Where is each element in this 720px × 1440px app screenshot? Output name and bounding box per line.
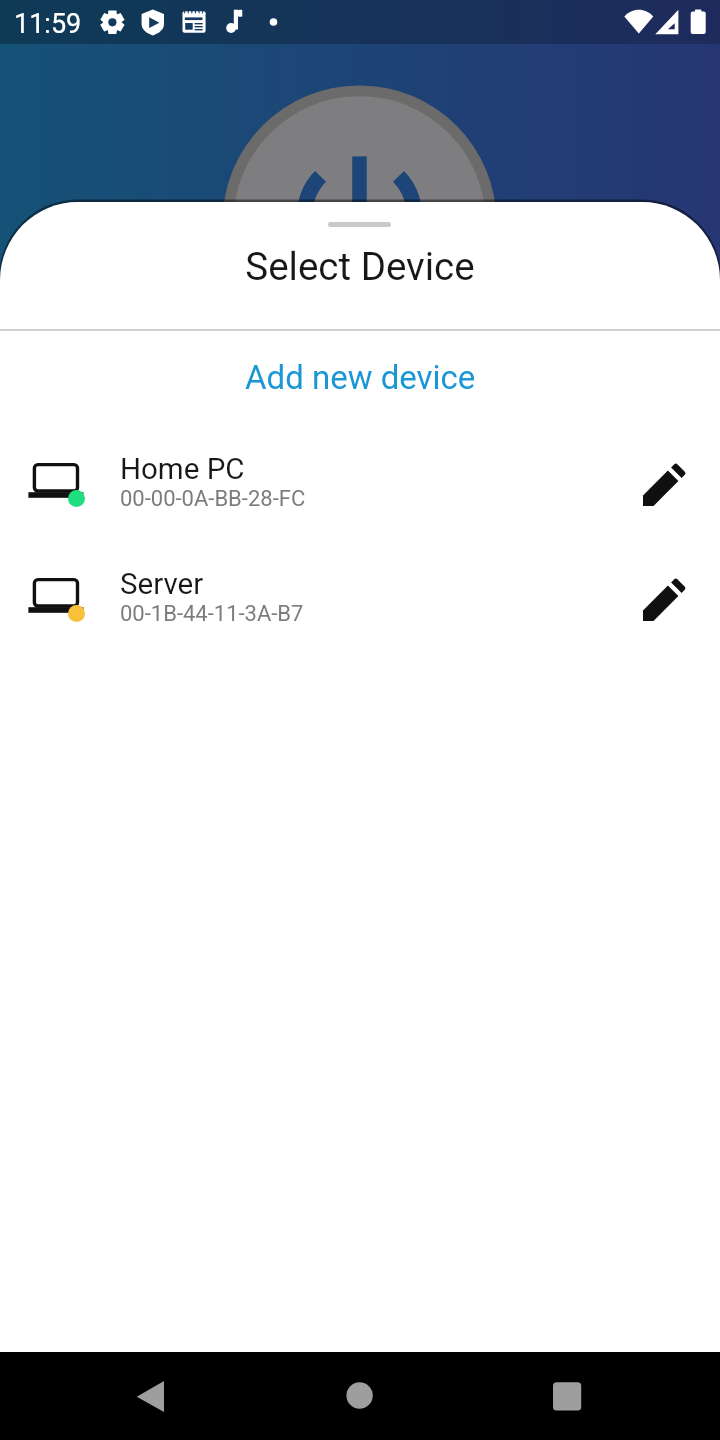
staticText: 11:59 (14, 8, 82, 40)
staticText: Server (120, 567, 204, 602)
button[interactable]: Add new device (0, 343, 720, 411)
button[interactable]: Home PC (0, 440, 720, 555)
staticText: 00-1B-44-11-3A-B7 (120, 601, 304, 627)
button[interactable]: Recents (512, 1352, 622, 1440)
button[interactable]: Edit device (634, 570, 694, 630)
button[interactable]: Edit device (634, 455, 694, 515)
staticText: Select Device (0, 244, 720, 289)
button[interactable]: Server (0, 555, 720, 670)
staticText: Add new device (245, 358, 476, 397)
staticText: Home PC (120, 452, 245, 487)
staticText: 00-00-0A-BB-28-FC (120, 486, 306, 512)
button[interactable]: Back (101, 1352, 211, 1440)
button[interactable]: Home (305, 1352, 415, 1440)
